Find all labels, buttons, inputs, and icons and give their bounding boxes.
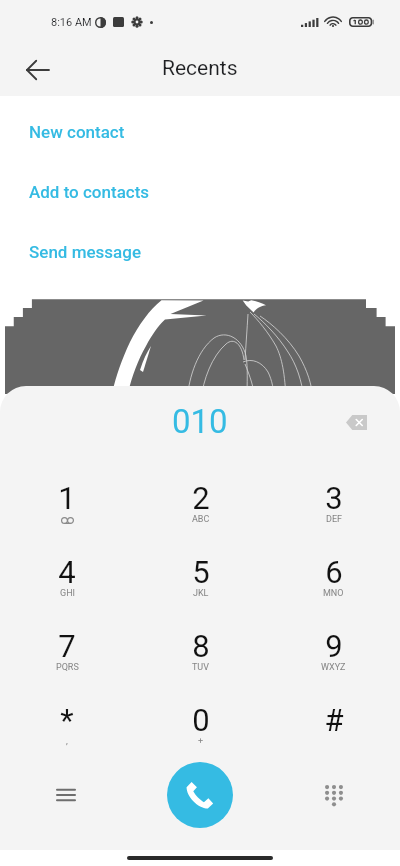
button[interactable]: New contact: [0, 102, 400, 162]
staticText: TUV: [192, 662, 209, 673]
staticText: 5: [192, 554, 210, 590]
button[interactable]: 7: [0, 622, 134, 696]
staticText: 2: [192, 480, 210, 516]
staticText: *: [60, 702, 74, 738]
staticText: 8: [192, 628, 210, 664]
staticText: 8:16 AM: [51, 16, 92, 29]
staticText: 6: [325, 554, 343, 590]
button[interactable]: 9: [267, 622, 400, 696]
button[interactable]: 1: [0, 474, 134, 548]
button[interactable]: 5: [134, 548, 267, 622]
button[interactable]: 0: [134, 696, 267, 770]
button[interactable]: 2: [134, 474, 267, 548]
staticText: #: [324, 702, 344, 738]
button[interactable]: Send message: [0, 222, 400, 282]
button[interactable]: #: [267, 696, 400, 770]
staticText: PQRS: [56, 662, 79, 673]
staticText: GHI: [60, 588, 75, 599]
button[interactable]: *: [0, 696, 134, 770]
staticText: Recents: [162, 56, 238, 81]
staticText: JKL: [193, 588, 209, 599]
staticText: ,: [66, 736, 68, 747]
staticText: 010: [172, 402, 228, 441]
button[interactable]: 3: [267, 474, 400, 548]
staticText: ABC: [192, 514, 210, 525]
button[interactable]: Add to contacts: [0, 162, 400, 222]
staticText: WXYZ: [321, 662, 346, 673]
staticText: +: [198, 736, 204, 747]
staticText: New contact: [29, 122, 125, 142]
button[interactable]: Dialpad: [312, 773, 356, 817]
button[interactable]: Menu: [44, 773, 88, 817]
button[interactable]: Back: [16, 48, 60, 92]
staticText: 3: [325, 480, 343, 516]
staticText: Add to contacts: [29, 182, 150, 202]
button[interactable]: Call: [167, 762, 233, 828]
staticText: 0: [192, 702, 210, 738]
staticText: Send message: [29, 242, 141, 262]
button[interactable]: 6: [267, 548, 400, 622]
button[interactable]: 4: [0, 548, 134, 622]
staticText: 9: [325, 628, 343, 664]
staticText: MNO: [323, 588, 344, 599]
button[interactable]: 8: [134, 622, 267, 696]
button[interactable]: Backspace: [334, 400, 378, 444]
staticText: DEF: [326, 514, 342, 525]
staticText: 1: [58, 480, 76, 516]
staticText: 4: [58, 554, 76, 590]
staticText: 7: [58, 628, 76, 664]
